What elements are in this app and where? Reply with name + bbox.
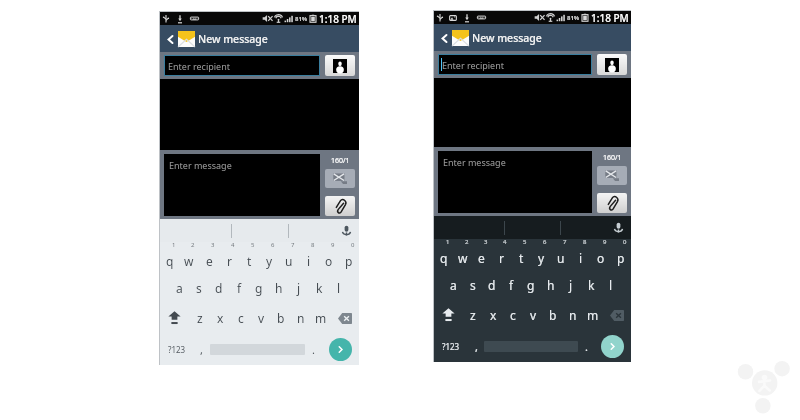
staticText: 6 <box>543 238 547 246</box>
button[interactable]: . <box>305 333 322 365</box>
button[interactable]: z <box>189 303 210 333</box>
button[interactable]: Voice input <box>338 223 354 239</box>
button[interactable]: g <box>521 270 541 300</box>
button[interactable]: 1 <box>434 239 453 270</box>
staticText: n <box>569 307 577 323</box>
button[interactable]: f <box>501 270 521 300</box>
staticText: . <box>585 339 588 354</box>
button[interactable]: Choose contacts <box>325 55 355 76</box>
button[interactable]: b <box>543 300 563 330</box>
button[interactable]: 9 <box>319 242 339 273</box>
button[interactable]: . <box>578 330 594 362</box>
staticText: 4 <box>503 238 507 246</box>
button[interactable]: d <box>209 273 229 303</box>
button[interactable]: Attach file <box>325 196 355 216</box>
button[interactable]: j <box>561 270 581 300</box>
staticText: i <box>307 253 311 269</box>
button[interactable]: 9 <box>591 239 611 270</box>
button[interactable]: Shift <box>434 300 463 330</box>
button[interactable]: 2 <box>179 242 199 273</box>
button[interactable]: Backspace <box>331 303 359 333</box>
staticText: a <box>450 277 457 293</box>
button[interactable]: a <box>170 273 189 303</box>
button[interactable]: 4 <box>491 239 511 270</box>
button[interactable]: Back <box>437 31 451 45</box>
button[interactable]: 2 <box>453 239 472 270</box>
button[interactable]: l <box>329 273 349 303</box>
button[interactable]: z <box>463 300 483 330</box>
button[interactable]: Backspace <box>603 300 631 330</box>
button[interactable]: l <box>601 270 621 300</box>
button[interactable]: 7 <box>279 242 299 273</box>
button[interactable]: s <box>189 273 209 303</box>
button[interactable]: s <box>463 270 482 300</box>
button[interactable]: Attach file <box>597 193 627 213</box>
button[interactable]: Send as multimedia message <box>325 169 355 188</box>
button[interactable]: c <box>503 300 523 330</box>
staticText: 5 <box>251 241 255 249</box>
button[interactable]: x <box>483 300 503 330</box>
staticText: 0 <box>351 241 355 249</box>
button[interactable]: 3 <box>199 242 219 273</box>
button[interactable]: 5 <box>239 242 259 273</box>
button[interactable]: f <box>229 273 249 303</box>
button[interactable]: 8 <box>299 242 319 273</box>
staticText: , <box>200 342 203 357</box>
button[interactable]: 3 <box>472 239 491 270</box>
button[interactable]: n <box>563 300 583 330</box>
button[interactable]: b <box>271 303 291 333</box>
button[interactable]: 0 <box>339 242 359 273</box>
staticText: 81% <box>295 15 308 23</box>
button[interactable]: a <box>444 270 463 300</box>
button[interactable]: k <box>581 270 601 300</box>
button[interactable]: Back <box>163 32 177 46</box>
button[interactable]: 0 <box>611 239 631 270</box>
button[interactable]: v <box>251 303 271 333</box>
staticText: 6 <box>271 241 275 249</box>
button[interactable]: x <box>210 303 231 333</box>
button[interactable]: j <box>289 273 309 303</box>
button[interactable]: 6 <box>259 242 279 273</box>
button[interactable]: Shift <box>160 303 189 333</box>
staticText: s <box>196 280 202 296</box>
button[interactable]: Send <box>601 335 624 358</box>
button[interactable]: Send as multimedia message <box>597 166 627 185</box>
staticText: 2 <box>465 238 469 246</box>
button[interactable]: Voice input <box>610 220 626 236</box>
button[interactable]: Choose contacts <box>597 54 627 75</box>
staticText: 3 <box>211 241 215 249</box>
button[interactable]: ?123 <box>434 330 468 362</box>
button[interactable]: Send <box>329 338 352 361</box>
staticText: e <box>206 253 213 269</box>
button[interactable]: ?123 <box>160 333 193 365</box>
staticText: l <box>609 277 613 293</box>
button[interactable]: 1 <box>160 242 179 273</box>
button[interactable]: 8 <box>571 239 591 270</box>
button[interactable]: h <box>541 270 561 300</box>
button[interactable]: k <box>309 273 329 303</box>
staticText: z <box>470 307 476 323</box>
button[interactable]: d <box>482 270 501 300</box>
staticText: 7 <box>563 238 567 246</box>
button[interactable]: m <box>583 300 603 330</box>
staticText: q <box>166 253 174 269</box>
button[interactable]: , <box>193 333 210 365</box>
staticText: 4 <box>231 241 235 249</box>
button[interactable]: g <box>249 273 269 303</box>
button[interactable]: Enter recipient <box>438 54 592 75</box>
button[interactable]: , <box>468 330 484 362</box>
button[interactable]: m <box>311 303 331 333</box>
button[interactable]: 6 <box>531 239 551 270</box>
button[interactable]: Enter message <box>164 154 320 216</box>
button[interactable]: h <box>269 273 289 303</box>
button[interactable]: v <box>523 300 543 330</box>
button[interactable]: n <box>291 303 311 333</box>
button[interactable]: 4 <box>219 242 239 273</box>
button[interactable]: c <box>231 303 251 333</box>
button[interactable]: 7 <box>551 239 571 270</box>
button[interactable]: Enter message <box>438 151 592 213</box>
button[interactable]: 5 <box>511 239 531 270</box>
button[interactable]: Enter recipient <box>164 55 320 76</box>
